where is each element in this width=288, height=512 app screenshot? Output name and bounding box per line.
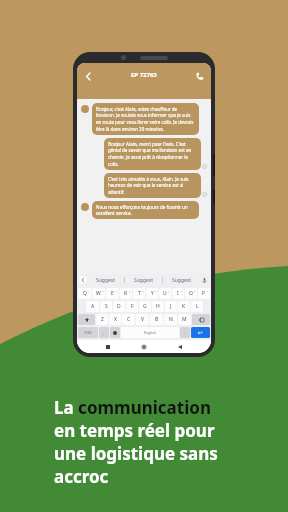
staticText: F [131, 303, 134, 310]
button[interactable]: M [178, 314, 191, 325]
staticText: P [202, 290, 206, 297]
button[interactable]: O [185, 288, 197, 299]
button[interactable]: Recents [103, 342, 113, 352]
button[interactable]: Expand [79, 276, 87, 284]
staticText: E [111, 290, 114, 297]
button[interactable]: Y [146, 288, 158, 299]
staticText: Bonjour, c'est Alain, votre chauffeur de… [96, 106, 195, 132]
staticText: 8 [181, 289, 183, 292]
staticText: 9 [194, 289, 196, 292]
staticText: R [124, 290, 128, 297]
button[interactable]: H [152, 301, 164, 312]
button[interactable]: B [150, 314, 163, 325]
staticText: Z [101, 316, 104, 323]
button[interactable]: Back [81, 69, 95, 83]
button[interactable]: L [191, 301, 203, 312]
staticText: 0 [207, 289, 209, 292]
button[interactable]: Space [121, 327, 179, 338]
button[interactable]: X [109, 314, 121, 325]
staticText: C [127, 316, 131, 323]
staticText: G [143, 303, 147, 310]
staticText: La communication en temps réel pour une … [54, 396, 218, 488]
staticText: 1 [88, 289, 90, 292]
button[interactable]: T [133, 288, 145, 299]
button[interactable]: Backspace [192, 314, 210, 325]
staticText: 2 [102, 289, 104, 292]
button[interactable]: E [106, 288, 119, 299]
staticText: A [91, 303, 95, 310]
button[interactable]: Back [175, 342, 185, 352]
button[interactable]: F [126, 301, 138, 312]
staticText: 5 [142, 289, 144, 292]
staticText: ?123 [84, 330, 92, 335]
button[interactable]: Nous nous efforçons toujours de fournir … [81, 201, 207, 219]
staticText: I [177, 290, 179, 297]
button[interactable]: Home [139, 342, 149, 352]
button[interactable]: Emoji [110, 327, 120, 338]
staticText: C'est très aimable à vous, Alain. Je sui… [108, 176, 197, 195]
button[interactable]: R [120, 288, 132, 299]
button[interactable]: Comma [99, 327, 109, 338]
button[interactable]: U [159, 288, 171, 299]
button[interactable]: Bonjour, c'est Alain, votre chauffeur de… [81, 103, 207, 135]
button[interactable]: C'est très aimable à vous, Alain. Je sui… [81, 173, 207, 198]
button[interactable]: J [165, 301, 177, 312]
button[interactable]: W [92, 288, 105, 299]
staticText: L [196, 303, 199, 310]
button[interactable]: C [122, 314, 135, 325]
staticText: W [96, 290, 101, 297]
staticText: 4 [129, 289, 131, 292]
staticText: Bonjour Alain, merci pour l'avis. C'est … [108, 141, 197, 167]
staticText: O [189, 290, 193, 297]
button[interactable]: Suggest [163, 274, 200, 286]
staticText: U [163, 290, 167, 297]
staticText: Nous nous efforçons toujours de fournir … [96, 204, 195, 216]
button[interactable]: A [86, 301, 99, 312]
button[interactable]: Z [96, 314, 108, 325]
button[interactable]: I [172, 288, 184, 299]
button[interactable]: P [198, 288, 210, 299]
staticText: S [105, 303, 108, 310]
staticText: Q [83, 290, 87, 297]
staticText: , [103, 330, 105, 335]
staticText: B [155, 316, 159, 323]
button[interactable]: V [136, 314, 149, 325]
button[interactable]: Bonjour Alain, merci pour l'avis. C'est … [81, 138, 207, 170]
button[interactable]: N [164, 314, 177, 325]
staticText: Y [151, 290, 154, 297]
staticText: H [156, 303, 160, 310]
staticText: 6 [155, 289, 157, 292]
button[interactable]: Q [78, 288, 91, 299]
staticText: . [184, 330, 186, 335]
staticText: N [169, 316, 173, 323]
button[interactable]: G [139, 301, 151, 312]
button[interactable]: Suggest [125, 274, 162, 286]
staticText: EP 72763 [131, 71, 157, 79]
staticText: Suggest [96, 277, 116, 284]
button[interactable]: D [113, 301, 125, 312]
staticText: V [141, 316, 145, 323]
staticText: K [182, 303, 186, 310]
button[interactable]: Period [180, 327, 190, 338]
staticText: Suggest [172, 277, 192, 284]
staticText: 7 [168, 289, 170, 292]
button[interactable]: Suggest [87, 274, 124, 286]
button[interactable]: Enter [191, 327, 210, 338]
button[interactable]: Shift [78, 314, 95, 325]
button[interactable]: S [100, 301, 112, 312]
button[interactable]: K [178, 301, 190, 312]
staticText: D [117, 303, 121, 310]
staticText: J [170, 303, 172, 310]
button[interactable]: Numbers [78, 327, 98, 338]
staticText: T [138, 290, 141, 297]
button[interactable]: Call [193, 69, 207, 83]
staticText: M [182, 316, 187, 323]
staticText: X [114, 316, 117, 323]
button[interactable]: Voice input [200, 276, 209, 285]
staticText: Suggest [134, 277, 154, 284]
staticText: English [144, 330, 156, 335]
staticText: 3 [116, 289, 118, 292]
